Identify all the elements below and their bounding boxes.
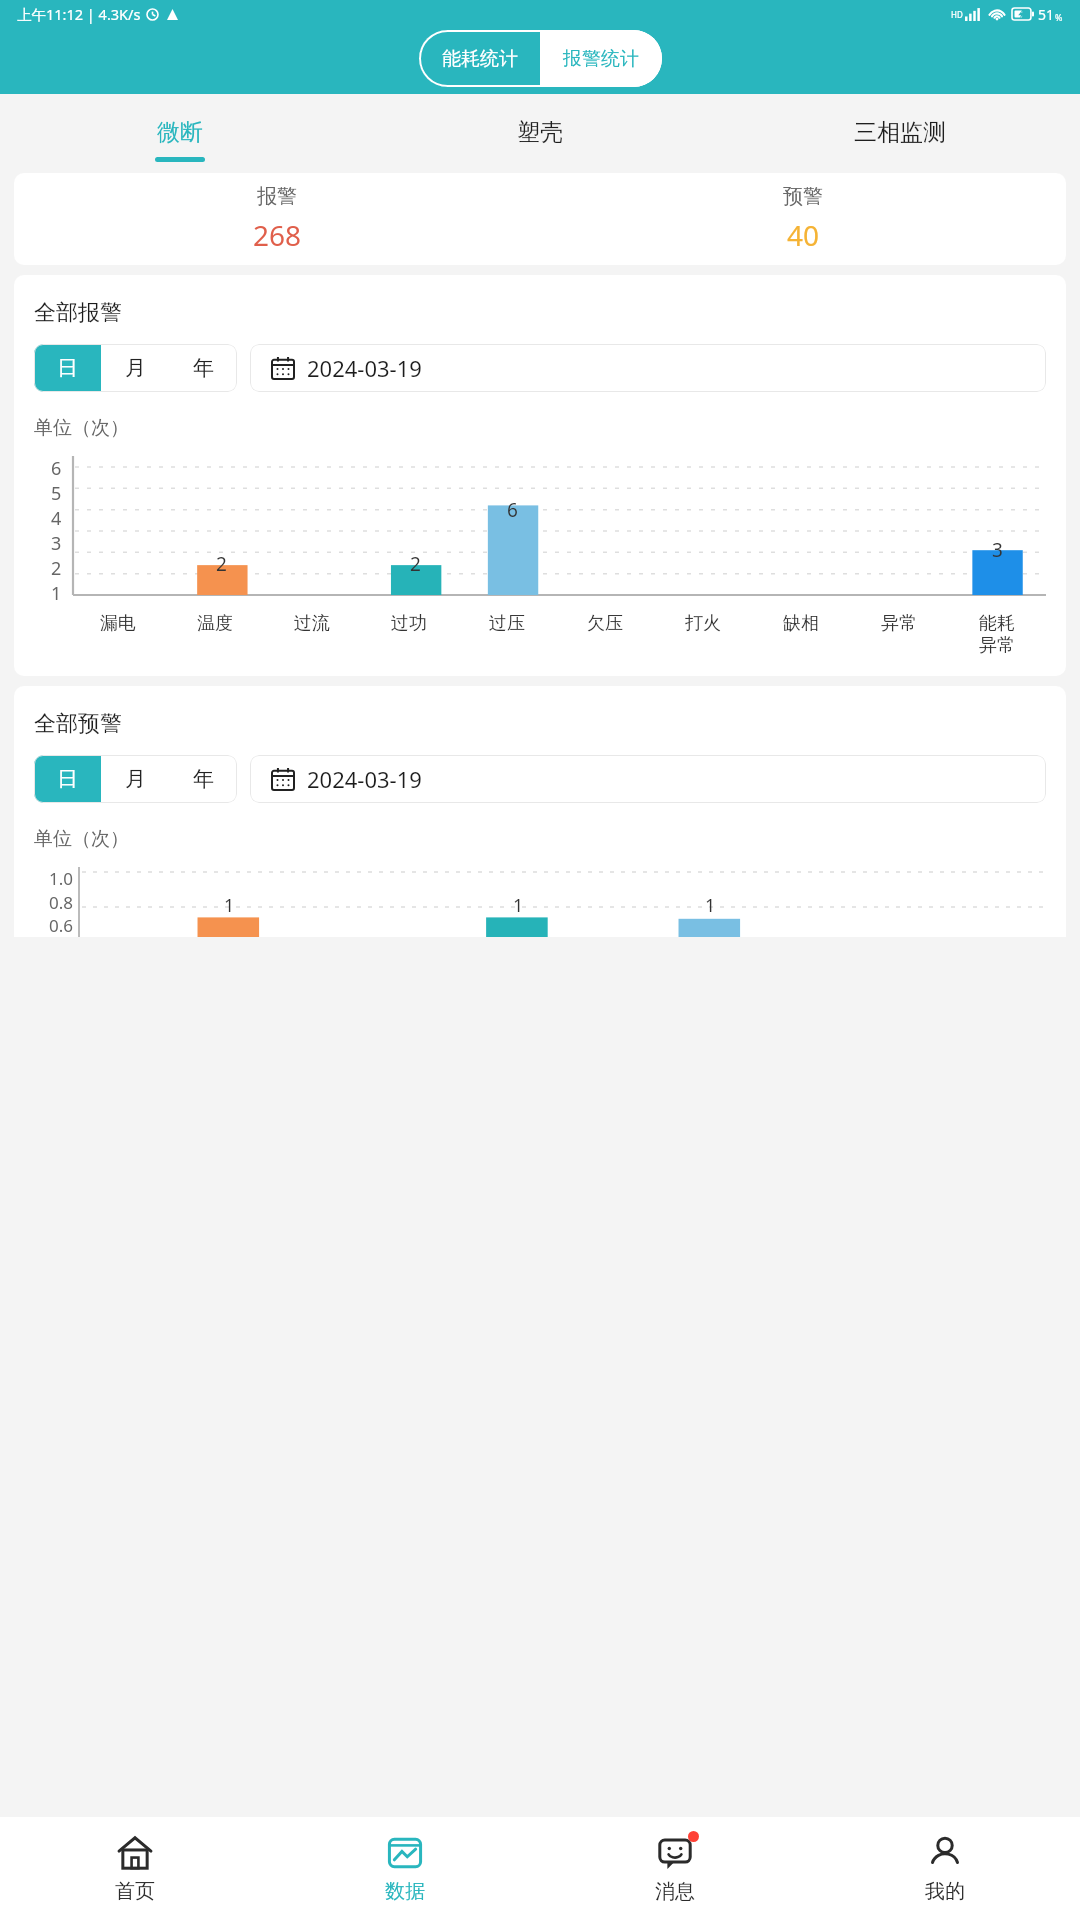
staticText: 微断: [157, 118, 203, 147]
staticText: 268: [253, 216, 302, 254]
staticText: 上午11:12 | 4.3K/s: [17, 4, 141, 24]
button[interactable]: 塑壳: [360, 94, 720, 173]
staticText: 打火: [685, 612, 721, 635]
staticText: 全部预警: [34, 710, 122, 738]
button[interactable]: 2024-03-19: [250, 755, 1046, 803]
button[interactable]: 消息: [540, 1817, 810, 1920]
staticText: 3: [51, 531, 62, 556]
staticText: %: [1055, 11, 1063, 23]
staticText: HD: [951, 9, 963, 20]
staticText: 日: [57, 355, 78, 381]
staticText: 0.8: [49, 891, 74, 914]
staticText: 报警: [257, 184, 297, 209]
staticText: 我的: [925, 1879, 965, 1904]
staticText: 3: [992, 537, 1003, 563]
other: 消息: [656, 1834, 694, 1872]
staticText: 1: [51, 581, 62, 606]
staticText: 51: [1038, 5, 1055, 24]
button[interactable]: 日: [34, 344, 101, 392]
button[interactable]: 日: [34, 755, 101, 803]
staticText: 报警统计: [563, 47, 639, 71]
staticText: 6: [507, 497, 518, 523]
staticText: 单位（次）: [34, 416, 129, 440]
staticText: 消息: [655, 1879, 695, 1904]
staticText: 2: [51, 556, 62, 581]
other: 首页: [116, 1834, 154, 1872]
button[interactable]: 微断: [0, 94, 360, 173]
staticText: 6: [51, 456, 62, 481]
staticText: 数据: [385, 1879, 425, 1904]
staticText: 1.0: [49, 867, 74, 890]
staticText: 40: [787, 216, 820, 254]
staticText: 首页: [115, 1879, 155, 1904]
staticText: 能耗统计: [442, 47, 518, 71]
staticText: 2024-03-19: [307, 353, 422, 383]
staticText: 1: [705, 893, 716, 918]
staticText: 过压: [489, 612, 525, 635]
button[interactable]: 数据: [270, 1817, 540, 1920]
staticText: 缺相: [783, 612, 819, 635]
staticText: 温度: [197, 612, 233, 635]
staticText: 0.6: [49, 914, 74, 937]
button[interactable]: 年: [169, 344, 237, 392]
staticText: 日: [57, 766, 78, 792]
staticText: 单位（次）: [34, 827, 129, 851]
staticText: 塑壳: [517, 118, 563, 147]
staticText: 预警: [783, 184, 823, 209]
staticText: 漏电: [100, 612, 136, 635]
button[interactable]: 三相监测: [720, 94, 1080, 173]
button[interactable]: 2024-03-19: [250, 344, 1046, 392]
staticText: 过功: [391, 612, 427, 635]
staticText: 1: [513, 893, 524, 918]
button[interactable]: 我的: [810, 1817, 1080, 1920]
staticText: 4: [51, 506, 62, 531]
staticText: 5: [51, 481, 62, 506]
button[interactable]: 月: [101, 755, 169, 803]
button[interactable]: 报警: [14, 173, 540, 265]
staticText: 年: [193, 355, 214, 381]
button[interactable]: 报警统计: [540, 30, 662, 87]
staticText: 月: [125, 766, 146, 792]
staticText: 月: [125, 355, 146, 381]
staticText: 能耗 异常: [979, 612, 1015, 656]
staticText: 2: [216, 551, 227, 577]
staticText: 异常: [881, 612, 917, 635]
staticText: 2: [410, 551, 421, 577]
staticText: 过流: [294, 612, 330, 635]
button[interactable]: 首页: [0, 1817, 270, 1920]
staticText: 2024-03-19: [307, 764, 422, 794]
staticText: 三相监测: [854, 118, 946, 147]
button[interactable]: 月: [101, 344, 169, 392]
staticText: 年: [193, 766, 214, 792]
other: 数据: [386, 1834, 424, 1872]
button[interactable]: 能耗统计: [419, 30, 540, 87]
staticText: 1: [224, 893, 235, 918]
button[interactable]: 年: [169, 755, 237, 803]
button[interactable]: 预警: [540, 173, 1066, 265]
staticText: 全部报警: [34, 299, 122, 327]
other: 我的: [926, 1834, 964, 1872]
staticText: 欠压: [587, 612, 623, 635]
